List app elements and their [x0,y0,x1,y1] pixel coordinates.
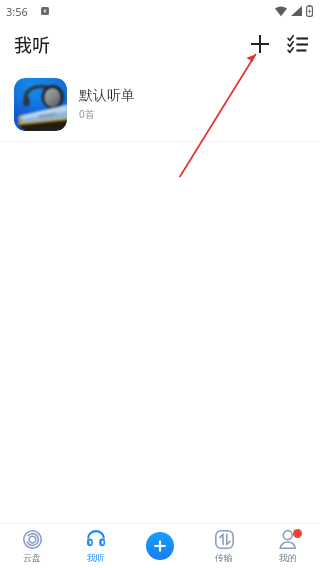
staticText: 3:56 [6,4,28,19]
staticText: 我听 [14,31,50,57]
button[interactable]: Add playlist [240,24,280,64]
button[interactable]: 我的 [256,524,320,568]
button[interactable]: Create [146,532,174,560]
staticText: 默认听单 [79,87,135,105]
button[interactable]: 我听 [64,524,128,568]
button[interactable]: 默认听单 [0,68,320,141]
staticText: 0首 [79,107,95,121]
staticText: 我听 [87,552,105,563]
staticText: 传输 [215,552,233,563]
button[interactable]: 云盘 [0,524,64,568]
staticText: 我的 [279,552,297,563]
button[interactable]: Manage list [278,24,318,64]
button[interactable]: 传输 [192,524,256,568]
staticText: 云盘 [23,552,41,563]
